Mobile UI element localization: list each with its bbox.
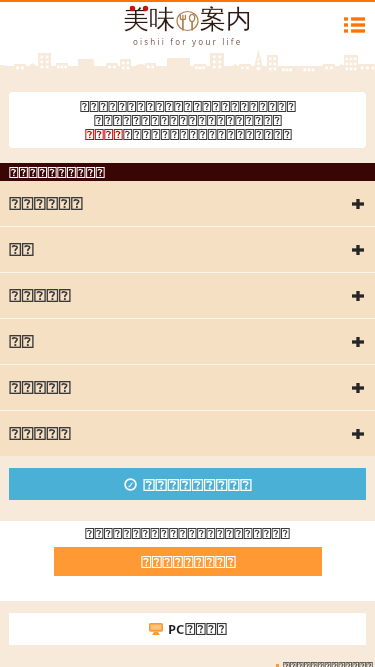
other: Expand bbox=[352, 429, 364, 439]
button[interactable]: Expand bbox=[0, 319, 375, 364]
staticText: 美味 bbox=[123, 3, 175, 36]
other: Expand bbox=[352, 245, 364, 255]
other: Expand bbox=[352, 337, 364, 347]
button[interactable]: Expand bbox=[0, 411, 375, 456]
other: Expand bbox=[352, 383, 364, 393]
button[interactable]: PC bbox=[9, 613, 366, 645]
button[interactable] bbox=[9, 468, 366, 500]
staticText: oishii for your life bbox=[133, 36, 243, 47]
staticText: PC bbox=[168, 620, 185, 638]
button[interactable]: Menu bbox=[342, 13, 366, 37]
button[interactable]: Expand bbox=[0, 227, 375, 272]
other: Expand bbox=[352, 199, 364, 209]
other: Expand bbox=[352, 291, 364, 301]
button[interactable]: Expand bbox=[0, 181, 375, 226]
button[interactable]: Expand bbox=[0, 273, 375, 318]
button[interactable]: Expand bbox=[0, 365, 375, 410]
button[interactable] bbox=[54, 547, 322, 576]
staticText: 案内 bbox=[200, 3, 252, 36]
